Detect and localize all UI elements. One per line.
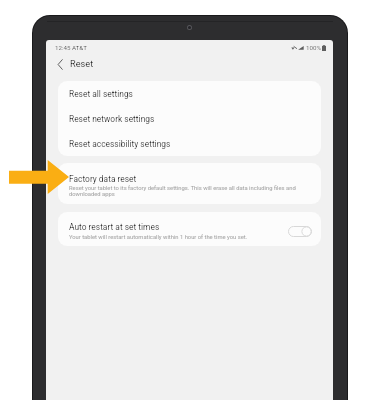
button[interactable]: Factory data reset (58, 163, 321, 204)
button[interactable]: Reset network settings (58, 106, 321, 131)
staticText: Reset (70, 58, 94, 69)
staticText: Reset accessibility settings (69, 139, 171, 149)
staticText: Reset all settings (69, 89, 133, 99)
staticText: Reset network settings (69, 114, 155, 124)
staticText: 100% (306, 44, 321, 51)
button[interactable]: Auto restart toggle (288, 226, 312, 237)
button[interactable]: Back (53, 57, 67, 71)
staticText: Factory data reset (69, 174, 137, 184)
button[interactable]: Reset accessibility settings (58, 131, 321, 156)
staticText: Reset your tablet to its factory default… (69, 185, 296, 192)
staticText: Your tablet will restart automatically w… (69, 234, 248, 241)
button[interactable]: Reset all settings (58, 81, 321, 106)
staticText: downloaded apps (69, 191, 115, 198)
button[interactable]: Auto restart at set times (58, 212, 321, 246)
staticText: Auto restart at set times (69, 222, 160, 232)
staticText: 12:45 AT&T (55, 44, 87, 51)
